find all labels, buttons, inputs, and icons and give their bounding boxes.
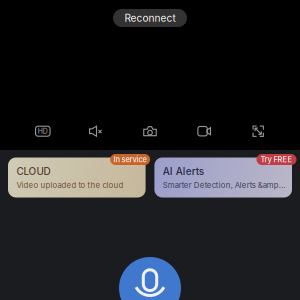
staticText: Video uploaded to the cloud [16, 180, 123, 190]
staticText: AI Alerts [163, 165, 204, 177]
button[interactable]: CLOUD [8, 157, 146, 197]
staticText: Smarter Detection, Alerts &amp; Smart Se… [163, 180, 286, 190]
button[interactable]: Full screen [230, 124, 284, 138]
button[interactable]: Unmute [70, 124, 123, 138]
button[interactable]: Take snapshot [123, 124, 177, 138]
button[interactable]: Video quality [16, 124, 70, 138]
button[interactable]: Record video [177, 124, 230, 138]
button[interactable]: Push to talk [119, 257, 181, 300]
staticText: In service [114, 155, 147, 164]
button[interactable]: Reconnect [113, 9, 187, 27]
staticText: CLOUD [16, 165, 50, 177]
staticText: Reconnect [124, 12, 175, 24]
staticText: HD [38, 127, 48, 135]
staticText: Try FREE [260, 155, 292, 164]
button[interactable]: AI Alerts [154, 157, 292, 197]
